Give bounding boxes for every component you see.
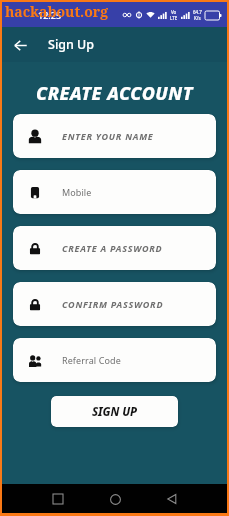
button[interactable]: ENTER YOUR NAME — [13, 114, 216, 158]
staticText: CREATE A PASSWORD — [62, 242, 163, 254]
staticText: 64.7 — [193, 9, 202, 15]
staticText: 12:25 — [38, 9, 62, 21]
button[interactable]: CREATE A PASSWORD — [13, 226, 216, 270]
button[interactable]: Back — [7, 32, 33, 58]
staticText: K/s — [194, 15, 201, 21]
staticText: Sign Up — [48, 36, 95, 53]
button[interactable]: Mobile — [13, 170, 216, 214]
staticText: SIGN UP — [92, 404, 138, 420]
button[interactable]: Recents — [45, 486, 71, 512]
staticText: ENTER YOUR NAME — [62, 130, 154, 142]
button[interactable]: Home — [102, 486, 128, 512]
staticText: Mobile — [62, 186, 92, 198]
staticText: CONFIRM PASSWORD — [62, 298, 164, 310]
staticText: CREATE ACCOUNT — [2, 81, 227, 106]
staticText: hackabout.org — [5, 2, 108, 21]
staticText: Vo — [171, 9, 177, 15]
button[interactable]: CONFIRM PASSWORD — [13, 282, 216, 326]
button[interactable]: Back — [159, 486, 185, 512]
button[interactable]: SIGN UP — [51, 396, 178, 427]
staticText: LTE — [170, 15, 178, 21]
staticText: Referral Code — [62, 354, 121, 366]
button[interactable]: Referral Code — [13, 338, 216, 382]
